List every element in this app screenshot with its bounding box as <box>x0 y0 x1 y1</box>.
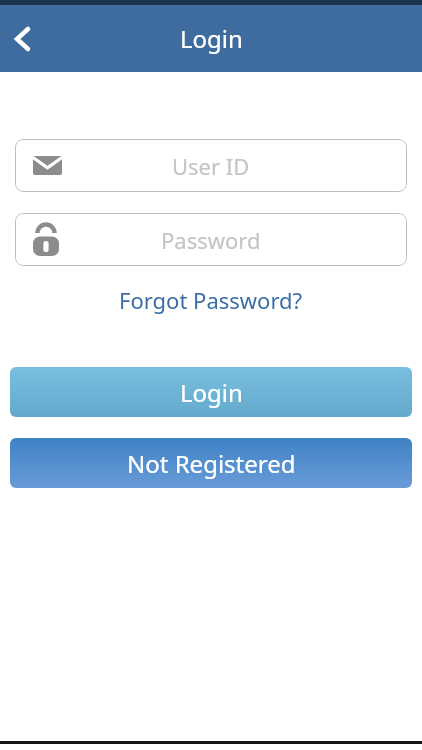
staticText: Login <box>180 22 243 55</box>
button[interactable]: Login <box>10 367 412 417</box>
button[interactable]: Not Registered <box>10 438 412 488</box>
staticText: Not Registered <box>127 447 296 480</box>
button[interactable] <box>6 23 38 55</box>
button[interactable]: Forgot Password? <box>119 285 303 315</box>
staticText: Login <box>180 376 243 409</box>
button[interactable]: User ID <box>15 139 407 192</box>
staticText: User ID <box>172 151 250 181</box>
button[interactable]: Password <box>15 213 407 266</box>
staticText: Password <box>161 225 261 255</box>
